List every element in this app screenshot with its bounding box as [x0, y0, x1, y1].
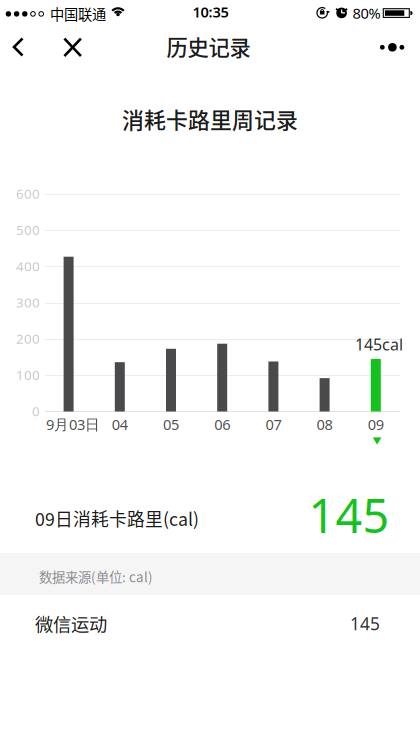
staticText: 历史记录: [166, 31, 250, 62]
staticText: 500: [16, 221, 40, 239]
button[interactable]: Back: [0, 35, 36, 59]
staticText: 100: [16, 366, 40, 384]
staticText: 微信运动: [35, 610, 107, 637]
button[interactable]: 06: [197, 194, 248, 437]
staticText: 0: [32, 402, 40, 420]
staticText: 数据来源(单位: cal): [39, 567, 153, 586]
button[interactable]: 07: [248, 194, 299, 437]
button[interactable]: 08: [299, 194, 350, 437]
staticText: 08: [317, 414, 333, 434]
button[interactable]: Close: [50, 34, 94, 60]
staticText: 06: [214, 414, 230, 434]
staticText: 145cal: [355, 334, 403, 355]
staticText: 145: [308, 484, 389, 546]
staticText: 09: [368, 414, 384, 434]
button[interactable]: More: [370, 25, 414, 69]
staticText: 80%: [352, 3, 380, 23]
staticText: 05: [163, 414, 179, 434]
staticText: 145: [350, 612, 380, 635]
staticText: 300: [16, 293, 40, 311]
button[interactable]: 09: [350, 194, 401, 437]
staticText: 09日消耗卡路里(cal): [35, 505, 199, 531]
staticText: 9月03日: [46, 414, 100, 434]
staticText: 中国联通: [50, 3, 106, 24]
staticText: 200: [16, 330, 40, 347]
button[interactable]: 微信运动: [0, 597, 420, 649]
staticText: 400: [16, 257, 40, 275]
staticText: 04: [112, 414, 128, 434]
staticText: 07: [265, 414, 281, 434]
staticText: 10:35: [192, 2, 228, 22]
staticText: 消耗卡路里周记录: [122, 103, 298, 135]
button[interactable]: 9月03日: [43, 194, 94, 437]
button[interactable]: 05: [145, 194, 197, 437]
button[interactable]: 04: [94, 194, 145, 437]
staticText: 600: [16, 185, 40, 202]
